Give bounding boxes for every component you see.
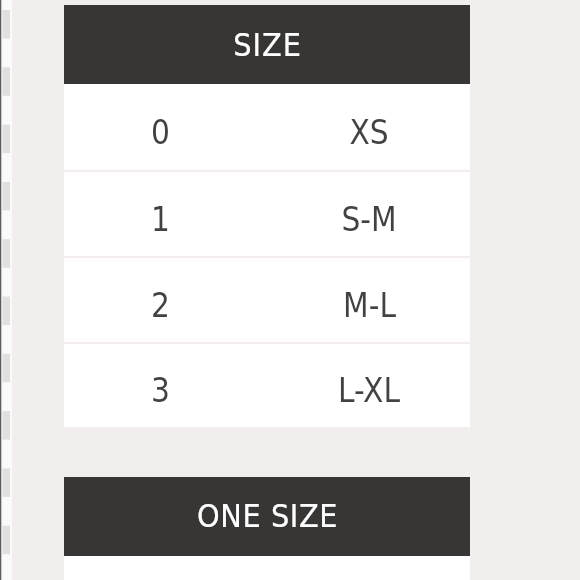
button[interactable]: ONE SIZE bbox=[64, 477, 470, 556]
staticText: 3 bbox=[151, 371, 170, 409]
staticText: SIZE bbox=[233, 26, 302, 63]
button[interactable]: 1 bbox=[64, 172, 470, 258]
button[interactable]: 3 bbox=[64, 344, 470, 427]
staticText: S-M bbox=[341, 200, 397, 238]
button[interactable]: 2 bbox=[64, 258, 470, 344]
staticText: XS bbox=[349, 113, 389, 151]
button[interactable]: 0 bbox=[64, 84, 470, 172]
staticText: M-L bbox=[343, 286, 396, 324]
staticText: L-XL bbox=[338, 371, 400, 409]
button[interactable]: SIZE bbox=[64, 5, 470, 84]
staticText: ONE SIZE bbox=[197, 497, 338, 534]
staticText: 0 bbox=[151, 113, 170, 151]
staticText: 1 bbox=[151, 200, 170, 238]
other: Scroll rail bbox=[0, 0, 13, 580]
staticText: 2 bbox=[151, 286, 170, 324]
